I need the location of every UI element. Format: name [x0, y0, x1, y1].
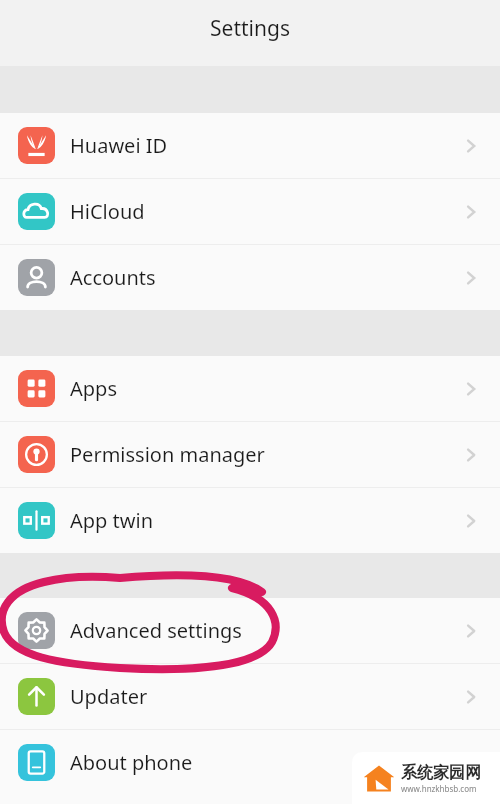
button[interactable]: Huawei ID: [0, 113, 500, 178]
staticText: Advanced settings: [70, 617, 242, 644]
staticText: Huawei ID: [70, 132, 168, 159]
button[interactable]: Apps: [0, 356, 500, 421]
staticText: HiCloud: [70, 198, 145, 225]
staticText: Apps: [70, 375, 117, 402]
button[interactable]: Advanced settings: [0, 598, 500, 663]
staticText: Accounts: [70, 264, 156, 291]
staticText: www.hnzkhbsb.com: [401, 783, 477, 794]
staticText: App twin: [70, 507, 154, 534]
button[interactable]: Accounts: [0, 245, 500, 310]
button[interactable]: Permission manager: [0, 422, 500, 487]
button[interactable]: HiCloud: [0, 179, 500, 244]
button[interactable]: App twin: [0, 488, 500, 553]
staticText: About phone: [70, 749, 193, 776]
staticText: Updater: [70, 683, 148, 710]
button[interactable]: Updater: [0, 664, 500, 729]
staticText: Permission manager: [70, 441, 265, 468]
button[interactable]: About phone: [0, 730, 500, 795]
staticText: 系统家园网: [401, 763, 481, 783]
staticText: Settings: [210, 14, 290, 43]
